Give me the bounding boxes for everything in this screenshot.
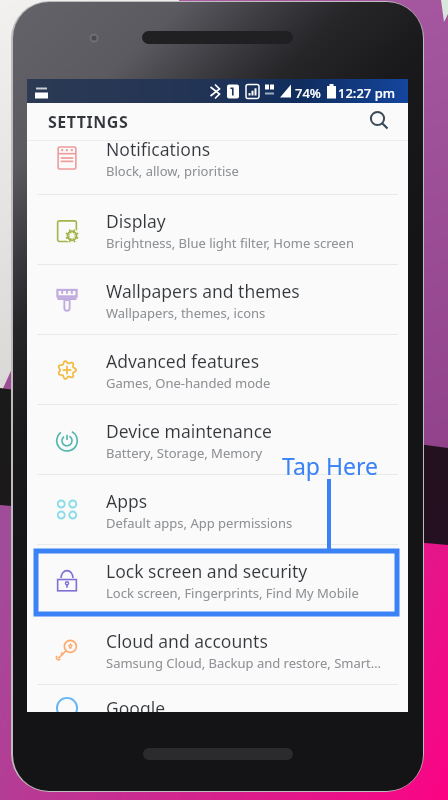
- staticText: Default apps, App permissions: [106, 514, 293, 532]
- staticText: 74%: [295, 84, 321, 102]
- staticText: Display: [106, 209, 166, 233]
- button[interactable]: Display: [27, 195, 408, 265]
- staticText: Tap Here: [282, 450, 379, 481]
- staticText: Wallpapers and themes: [106, 279, 300, 303]
- staticText: Lock screen and security: [106, 559, 308, 583]
- staticText: Cloud and accounts: [106, 629, 268, 653]
- staticText: Google: [106, 696, 166, 712]
- staticText: 12:27 pm: [338, 84, 396, 102]
- button[interactable]: Search: [365, 107, 395, 137]
- button[interactable]: Advanced features: [27, 335, 408, 405]
- staticText: Brightness, Blue light filter, Home scre…: [106, 234, 354, 252]
- staticText: Battery, Storage, Memory: [106, 444, 263, 462]
- staticText: Advanced features: [106, 349, 260, 373]
- button[interactable]: Lock screen and security: [27, 545, 408, 615]
- staticText: Games, One-handed mode: [106, 374, 271, 392]
- staticText: Apps: [106, 489, 148, 513]
- staticText: Lock screen, Fingerprints, Find My Mobil…: [106, 584, 359, 602]
- staticText: Wallpapers, themes, icons: [106, 304, 266, 322]
- button[interactable]: Device maintenance: [27, 405, 408, 475]
- button[interactable]: Apps: [27, 475, 408, 545]
- button[interactable]: Cloud and accounts: [27, 615, 408, 685]
- staticText: Samsung Cloud, Backup and restore, Smart…: [106, 654, 382, 672]
- staticText: Block, allow, prioritise: [106, 162, 239, 180]
- button[interactable]: Notifications: [27, 141, 408, 195]
- button[interactable]: Google: [27, 685, 408, 712]
- staticText: Notifications: [106, 141, 211, 161]
- staticText: SETTINGS: [48, 111, 129, 133]
- staticText: Device maintenance: [106, 419, 272, 443]
- button[interactable]: Wallpapers and themes: [27, 265, 408, 335]
